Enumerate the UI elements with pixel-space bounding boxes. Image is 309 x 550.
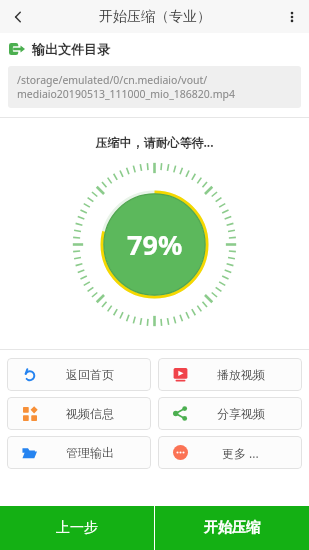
staticText: 视频信息 <box>66 406 114 421</box>
button[interactable]: 更多 ... <box>158 436 302 469</box>
button[interactable]: 视频信息 <box>7 397 151 430</box>
button[interactable]: 开始压缩 <box>155 506 309 550</box>
staticText: 压缩中，请耐心等待... <box>0 134 309 150</box>
staticText: /storage/emulated/0/cn.mediaio/vout/ med… <box>17 73 235 101</box>
staticText: 79% <box>127 226 183 263</box>
staticText: 返回首页 <box>66 367 114 382</box>
staticText: 输出文件目录 <box>32 41 110 57</box>
button[interactable]: 返回首页 <box>7 358 151 391</box>
button[interactable]: 播放视频 <box>158 358 302 391</box>
staticText: 开始压缩（专业） <box>99 8 211 26</box>
button[interactable]: 管理输出 <box>7 436 151 469</box>
staticText: 开始压缩 <box>204 519 260 537</box>
staticText: 管理输出 <box>66 445 114 460</box>
button[interactable]: Back <box>0 0 36 33</box>
staticText: 分享视频 <box>217 406 265 421</box>
button[interactable]: More options <box>275 0 309 33</box>
staticText: 播放视频 <box>217 367 265 382</box>
staticText: 上一步 <box>56 519 98 537</box>
button[interactable]: 上一步 <box>0 506 154 550</box>
staticText: 更多 ... <box>222 445 259 461</box>
button[interactable]: 分享视频 <box>158 397 302 430</box>
